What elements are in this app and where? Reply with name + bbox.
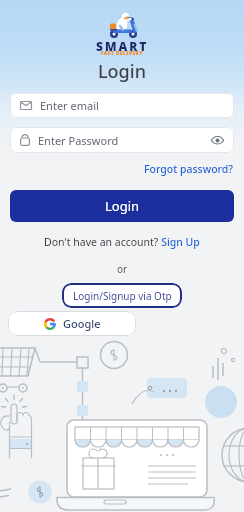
staticText: Login	[98, 59, 146, 84]
staticText: Forgot password?	[144, 162, 234, 176]
staticText: Don't have an account? Sign Up	[44, 235, 200, 249]
staticText: SMART	[96, 38, 149, 54]
staticText: Login	[105, 197, 140, 215]
staticText: Login/Signup via Otp	[73, 289, 172, 303]
staticText: Enter Password	[38, 133, 119, 148]
staticText: Enter email	[40, 98, 99, 113]
staticText: FAST DELIVERY	[101, 50, 143, 56]
staticText: or	[117, 262, 128, 276]
staticText: Google	[63, 316, 101, 331]
